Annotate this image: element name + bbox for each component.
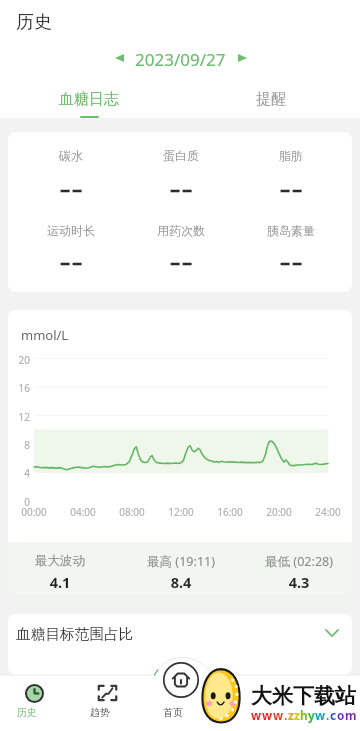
staticText: 2023/09/27: [135, 48, 226, 71]
staticText: o: [337, 707, 345, 723]
staticText: 碳水: [8, 148, 141, 163]
staticText: .: [284, 707, 288, 723]
button[interactable]: 提醒: [201, 90, 341, 120]
staticText: 16:00: [210, 505, 250, 519]
staticText: 胰岛素量: [221, 223, 352, 238]
staticText: 12: [8, 410, 30, 424]
staticText: 20:00: [259, 505, 299, 519]
staticText: 趋势: [78, 706, 122, 719]
staticText: 24:00: [308, 505, 348, 519]
staticText: 4: [8, 466, 30, 480]
staticText: 12:00: [161, 505, 201, 519]
staticText: m: [345, 707, 357, 723]
staticText: y: [308, 707, 315, 723]
staticText: 用药次数: [111, 223, 251, 238]
staticText: 蛋白质: [111, 148, 251, 163]
staticText: 16: [8, 381, 30, 395]
staticText: 脂肪: [221, 148, 352, 163]
button[interactable]: 血糖目标范围占比: [8, 614, 352, 675]
staticText: 04:00: [63, 505, 103, 519]
staticText: 最大波动: [8, 553, 130, 569]
staticText: 最低 (02:28): [229, 553, 352, 570]
staticText: 20: [8, 353, 30, 367]
staticText: 提醒: [256, 90, 286, 109]
staticText: 血糖日志: [59, 90, 119, 109]
staticText: 大米下载站: [251, 683, 356, 709]
staticText: .: [326, 707, 330, 723]
staticText: w: [315, 707, 326, 723]
staticText: 最高 (19:11): [111, 553, 251, 570]
staticText: 8: [8, 438, 30, 452]
staticText: w: [273, 707, 284, 723]
staticText: w: [262, 707, 273, 723]
staticText: 00:00: [14, 505, 54, 519]
button[interactable]: 首页: [159, 662, 203, 720]
staticText: 首页: [151, 706, 195, 719]
staticText: 历史: [16, 11, 52, 34]
staticText: 0: [8, 495, 30, 509]
staticText: 运动时长: [8, 223, 141, 238]
staticText: 4.3: [229, 572, 352, 592]
button[interactable]: 趋势: [86, 682, 130, 720]
staticText: mmol/L: [21, 326, 69, 344]
staticText: z: [294, 707, 300, 723]
staticText: w: [251, 707, 262, 723]
staticText: h: [300, 707, 308, 723]
staticText: 血糖目标范围占比: [16, 625, 134, 644]
button[interactable]: 历史: [13, 682, 57, 720]
button[interactable]: Previous day: [108, 47, 130, 69]
staticText: 08:00: [112, 505, 152, 519]
staticText: 历史: [5, 706, 49, 719]
button[interactable]: Next day: [231, 47, 253, 69]
staticText: 8.4: [111, 572, 251, 592]
staticText: 4.1: [8, 572, 130, 592]
staticText: c: [330, 707, 337, 723]
staticText: z: [288, 707, 294, 723]
button[interactable]: 血糖日志: [19, 90, 159, 120]
